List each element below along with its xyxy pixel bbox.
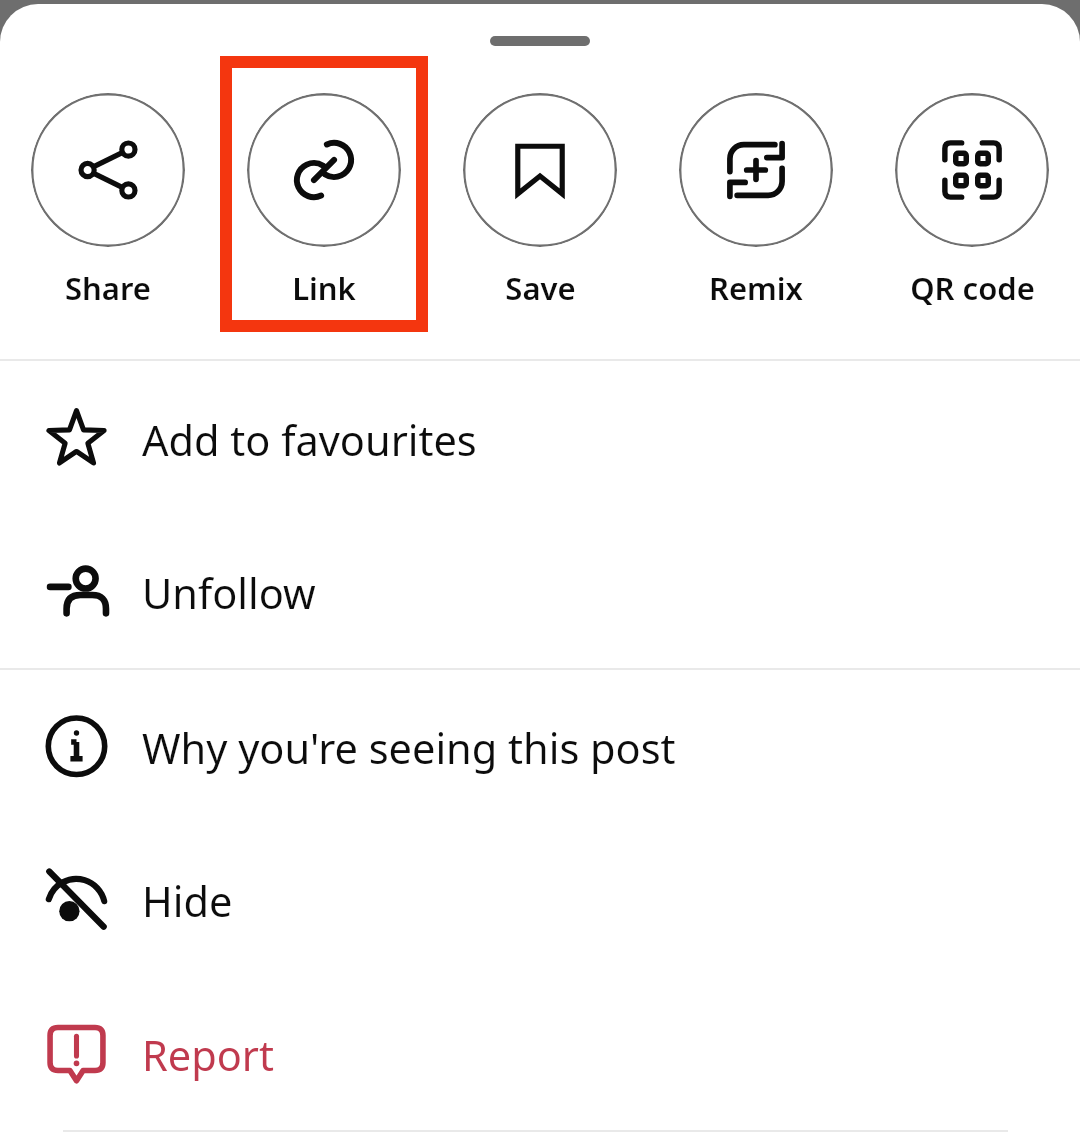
staticText: Why you're seeing this post xyxy=(142,720,676,777)
staticText: Unfollow xyxy=(142,565,316,622)
button[interactable]: Remix xyxy=(648,93,864,309)
staticText: QR code xyxy=(910,267,1035,309)
staticText: Hide xyxy=(142,873,233,930)
button[interactable]: Why you're seeing this post xyxy=(0,670,1080,823)
staticText: Save xyxy=(505,267,576,309)
button[interactable]: Link xyxy=(216,93,432,309)
staticText: Report xyxy=(142,1027,274,1084)
staticText: Link xyxy=(292,267,356,309)
staticText: Remix xyxy=(709,267,803,309)
button[interactable]: Report xyxy=(0,976,1080,1130)
staticText: Share xyxy=(65,267,151,309)
staticText: Add to favourites xyxy=(142,412,477,469)
button[interactable]: Add to favourites xyxy=(0,361,1080,515)
button[interactable]: Hide xyxy=(0,823,1080,976)
button[interactable]: Unfollow xyxy=(0,515,1080,668)
button[interactable]: QR code xyxy=(864,93,1080,309)
button[interactable]: Share xyxy=(0,93,216,309)
button[interactable]: Save xyxy=(432,93,648,309)
